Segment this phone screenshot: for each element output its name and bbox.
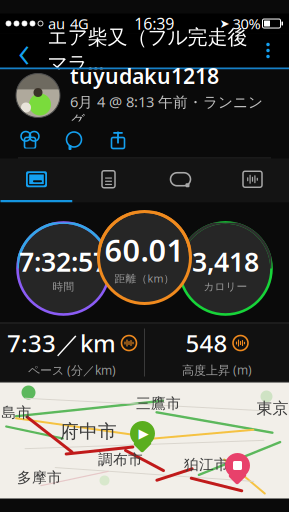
staticText: au <box>48 14 65 33</box>
staticText: 3,418 <box>192 244 259 279</box>
staticText: カロリー <box>203 280 247 293</box>
staticText: 7:32:57 <box>19 244 108 279</box>
button[interactable]: Share <box>96 122 140 156</box>
staticText: 三鷹市 <box>136 394 181 412</box>
staticText: 距離（km） <box>114 271 174 285</box>
button[interactable]: Laps <box>144 158 216 202</box>
staticText: エア柴又（フル完走後マラ… <box>47 25 247 76</box>
staticText: ➤ <box>219 17 229 30</box>
staticText: 多摩市 <box>17 468 62 486</box>
button[interactable]: Details <box>72 158 144 202</box>
staticText: 548 <box>185 327 227 359</box>
staticText: ▶ <box>138 426 148 441</box>
button[interactable]: Comment <box>52 122 96 156</box>
button[interactable]: tuyudaku1218 profile <box>0 69 289 121</box>
staticText: 4G <box>70 14 89 33</box>
staticText: ペース (分／km) <box>28 362 116 378</box>
staticText: 16:39 <box>134 13 174 34</box>
button[interactable]: Route map <box>0 382 289 498</box>
staticText: 6月 4 @ 8:13 午前・ランニング <box>70 92 263 129</box>
staticText: 30% <box>232 14 260 33</box>
staticText: 高度上昇 (m) <box>182 362 252 378</box>
button[interactable]: More options <box>251 33 285 67</box>
button[interactable]: Like <box>8 122 52 156</box>
staticText: 狛江市 <box>184 455 229 473</box>
staticText: 時間 <box>52 280 74 293</box>
staticText: tuyudaku1218 <box>70 62 219 90</box>
staticText: 府中市 <box>60 420 117 443</box>
staticText: ‹ <box>18 20 30 81</box>
staticText: 調布市 <box>98 450 143 468</box>
staticText: 島市 <box>1 403 31 421</box>
staticText: 7:33／km <box>7 327 116 359</box>
button[interactable]: Map <box>0 158 72 202</box>
button[interactable]: Back <box>4 33 44 67</box>
staticText: 東京 <box>256 399 288 418</box>
button[interactable]: Charts <box>216 158 288 202</box>
staticText: 60.01 <box>104 230 184 270</box>
